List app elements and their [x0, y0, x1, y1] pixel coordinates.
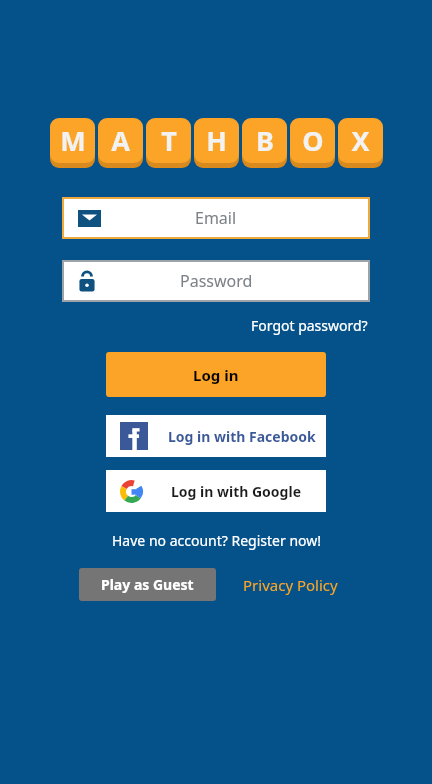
staticText: Play as Guest — [101, 575, 194, 594]
button[interactable]: Password — [62, 260, 370, 302]
button[interactable]: Have no account? Register now! — [110, 529, 323, 552]
staticText: H — [206, 122, 227, 159]
button[interactable]: Privacy Policy — [241, 573, 340, 597]
staticText: O — [302, 122, 324, 159]
staticText: T — [161, 122, 177, 159]
staticText: B — [256, 122, 274, 159]
staticText: Log in — [193, 365, 239, 385]
staticText: Log in with Google — [171, 482, 301, 501]
other: Password — [78, 271, 96, 292]
staticText: Password — [180, 270, 253, 292]
button[interactable]: Log in — [106, 352, 326, 397]
button[interactable]: Play as Guest — [79, 568, 216, 601]
other: Google — [120, 480, 143, 503]
button[interactable]: Google — [106, 470, 326, 512]
button[interactable]: Facebook — [106, 415, 326, 457]
staticText: Privacy Policy — [243, 575, 338, 595]
staticText: M — [60, 122, 86, 159]
button[interactable]: Email — [62, 197, 370, 239]
button[interactable]: Forgot password? — [249, 314, 370, 337]
staticText: X — [351, 122, 370, 159]
staticText: Forgot password? — [251, 316, 368, 335]
other: Email — [78, 210, 101, 227]
staticText: Email — [195, 207, 237, 229]
staticText: A — [111, 122, 130, 159]
other: Facebook — [120, 422, 148, 450]
staticText: Log in with Facebook — [168, 427, 316, 446]
staticText: Have no account? Register now! — [112, 531, 321, 550]
